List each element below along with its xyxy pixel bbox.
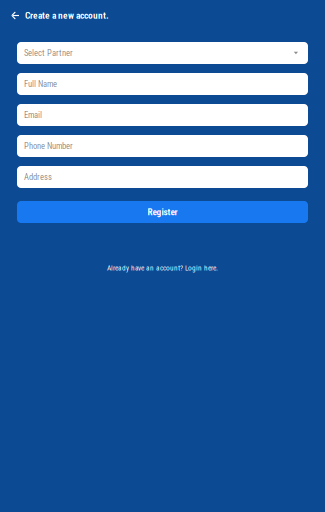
button[interactable]: Email bbox=[17, 104, 308, 126]
staticText: Create a new account. bbox=[25, 10, 109, 21]
button[interactable]: Select Partner bbox=[17, 42, 308, 64]
staticText: Full Name bbox=[24, 79, 57, 89]
button[interactable]: Phone Number bbox=[17, 135, 308, 157]
button[interactable]: Full Name bbox=[17, 73, 308, 95]
staticText: Register bbox=[147, 206, 177, 217]
button[interactable]: Address bbox=[17, 166, 308, 188]
button[interactable]: Back bbox=[0, 2, 25, 29]
button[interactable]: Already have an account? Login here. bbox=[0, 262, 325, 274]
button[interactable]: Register bbox=[17, 201, 308, 223]
staticText: Phone Number bbox=[24, 141, 73, 151]
staticText: Email bbox=[24, 110, 42, 120]
staticText: Address bbox=[24, 172, 52, 182]
staticText: Already have an account? Login here. bbox=[107, 264, 218, 272]
staticText: Select Partner bbox=[24, 48, 73, 58]
